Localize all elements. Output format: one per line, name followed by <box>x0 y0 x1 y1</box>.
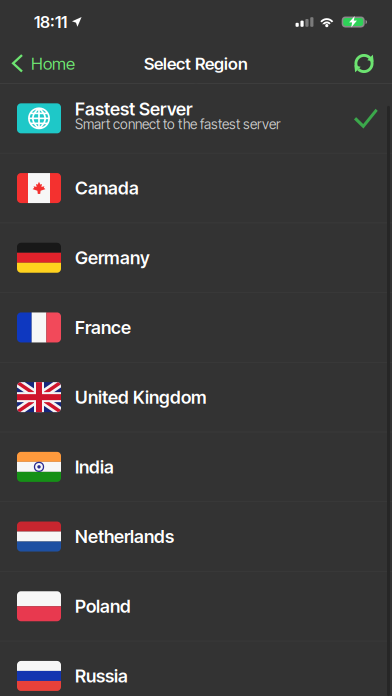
button[interactable]: Netherlands <box>0 502 392 571</box>
staticText: Fastest Server <box>75 98 192 120</box>
button[interactable]: Refresh <box>341 44 392 82</box>
staticText: 18:11 <box>34 12 67 32</box>
button[interactable]: Russia <box>0 641 392 696</box>
button[interactable]: Poland <box>0 572 392 641</box>
staticText: Smart connect to the fastest server <box>75 116 280 133</box>
staticText: India <box>75 456 114 478</box>
button[interactable]: United Kingdom <box>0 363 392 432</box>
button[interactable]: Home <box>0 45 83 82</box>
button[interactable]: India <box>0 432 392 501</box>
staticText: Canada <box>75 177 139 199</box>
button[interactable]: Fastest Server <box>0 84 392 153</box>
button[interactable]: Germany <box>0 223 392 292</box>
staticText: Home <box>31 53 75 74</box>
staticText: United Kingdom <box>75 386 207 408</box>
staticText: Germany <box>75 247 150 269</box>
staticText: France <box>75 317 131 338</box>
button[interactable]: France <box>0 293 392 362</box>
staticText: Select Region <box>144 53 248 74</box>
staticText: Russia <box>75 665 128 687</box>
staticText: Poland <box>75 595 131 617</box>
staticText: Netherlands <box>75 526 174 547</box>
button[interactable]: Canada <box>0 153 392 223</box>
